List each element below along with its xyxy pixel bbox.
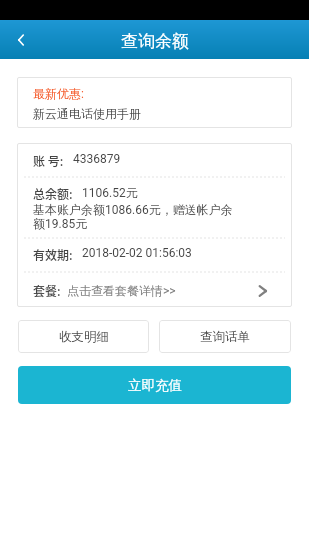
staticText: 有效期:: [33, 246, 73, 263]
button[interactable]: Back: [0, 20, 44, 59]
staticText: 2018-02-02 01:56:03: [82, 246, 192, 260]
staticText: 基本账户余额1086.66元，赠送帐户余额19.85元: [33, 202, 241, 232]
staticText: 收支明细: [59, 329, 109, 345]
button[interactable]: 查询话单: [159, 320, 291, 353]
staticText: 1106.52元: [82, 185, 138, 200]
button[interactable]: 套餐:: [24, 282, 285, 299]
staticText: 4336879: [73, 152, 121, 166]
staticText: 套餐:: [33, 282, 61, 299]
staticText: 最新优惠:: [33, 86, 84, 101]
button[interactable]: 立即充值: [18, 366, 291, 404]
staticText: 账 号:: [33, 152, 64, 169]
staticText: 查询话单: [200, 329, 250, 345]
staticText: 查询余额: [121, 31, 189, 52]
button[interactable]: 收支明细: [18, 320, 149, 353]
staticText: 总余额:: [33, 185, 73, 202]
staticText: 点击查看套餐详情>>: [67, 283, 176, 298]
staticText: 立即充值: [128, 377, 182, 394]
staticText: 新云通电话使用手册: [33, 106, 141, 121]
